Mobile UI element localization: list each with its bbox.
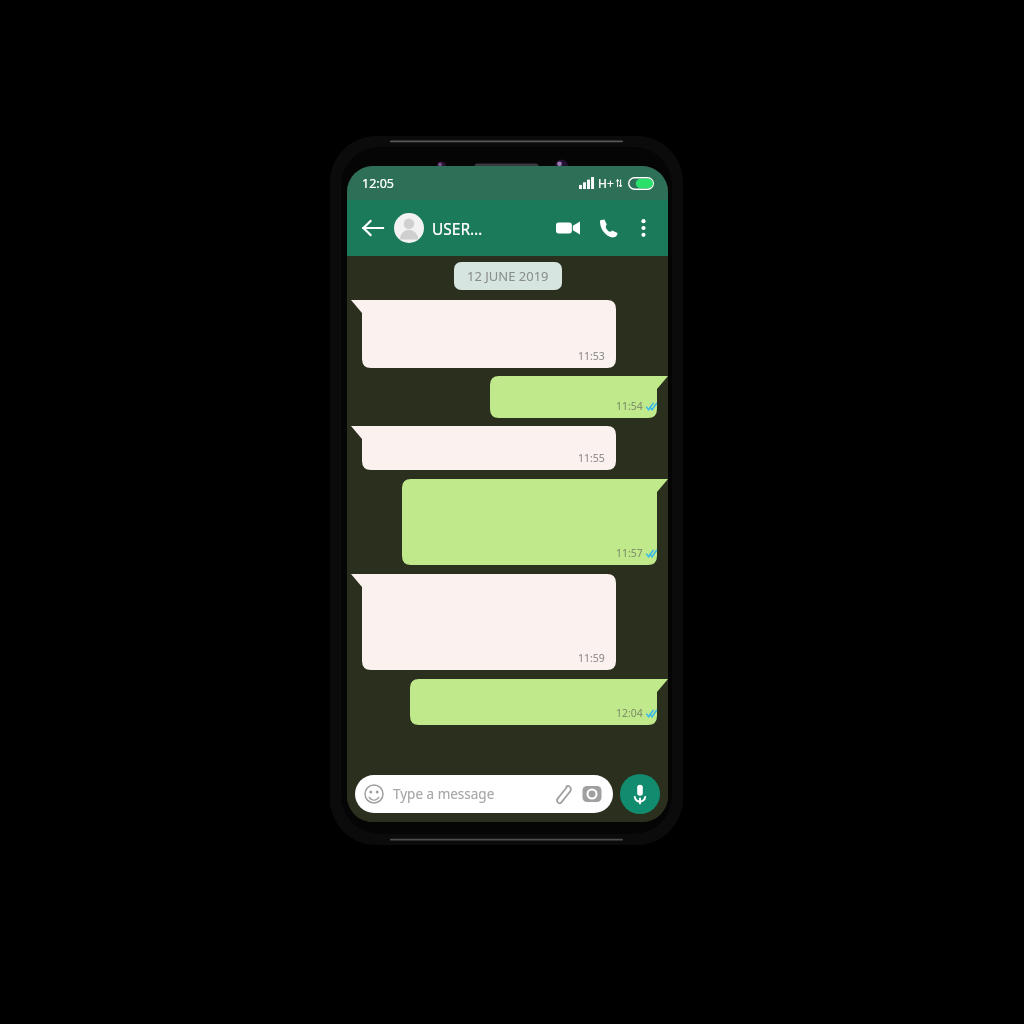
staticText: 11:53: [578, 349, 605, 363]
button[interactable]: 12:04: [410, 679, 668, 725]
button[interactable]: 11:57: [402, 479, 668, 565]
staticText: 11:59: [578, 651, 605, 665]
button[interactable]: USER…: [394, 200, 550, 256]
button[interactable]: 11:53: [351, 300, 616, 368]
staticText: 11:54: [616, 399, 643, 413]
button[interactable]: Camera: [580, 782, 604, 806]
staticText: USER…: [432, 218, 483, 239]
button[interactable]: Type a message: [355, 775, 613, 813]
staticText: 11:55: [578, 451, 605, 465]
button[interactable]: Record voice message: [620, 774, 660, 814]
staticText: 12:05: [362, 175, 394, 192]
button[interactable]: 11:59: [351, 574, 616, 670]
staticText: H+: [598, 175, 614, 191]
staticText: 12 JUNE 2019: [467, 267, 549, 285]
button[interactable]: Back: [356, 211, 390, 245]
button[interactable]: 11:54: [490, 376, 668, 418]
button[interactable]: Attach: [550, 782, 574, 806]
button[interactable]: 12 JUNE 2019: [454, 262, 562, 290]
staticText: 12:04: [616, 706, 643, 720]
staticText: 11:57: [616, 546, 643, 560]
button[interactable]: Call: [590, 210, 626, 246]
staticText: Type a message: [393, 785, 550, 803]
button[interactable]: More options: [626, 211, 660, 245]
button[interactable]: Video call: [550, 210, 586, 246]
button[interactable]: 11:55: [351, 426, 616, 470]
